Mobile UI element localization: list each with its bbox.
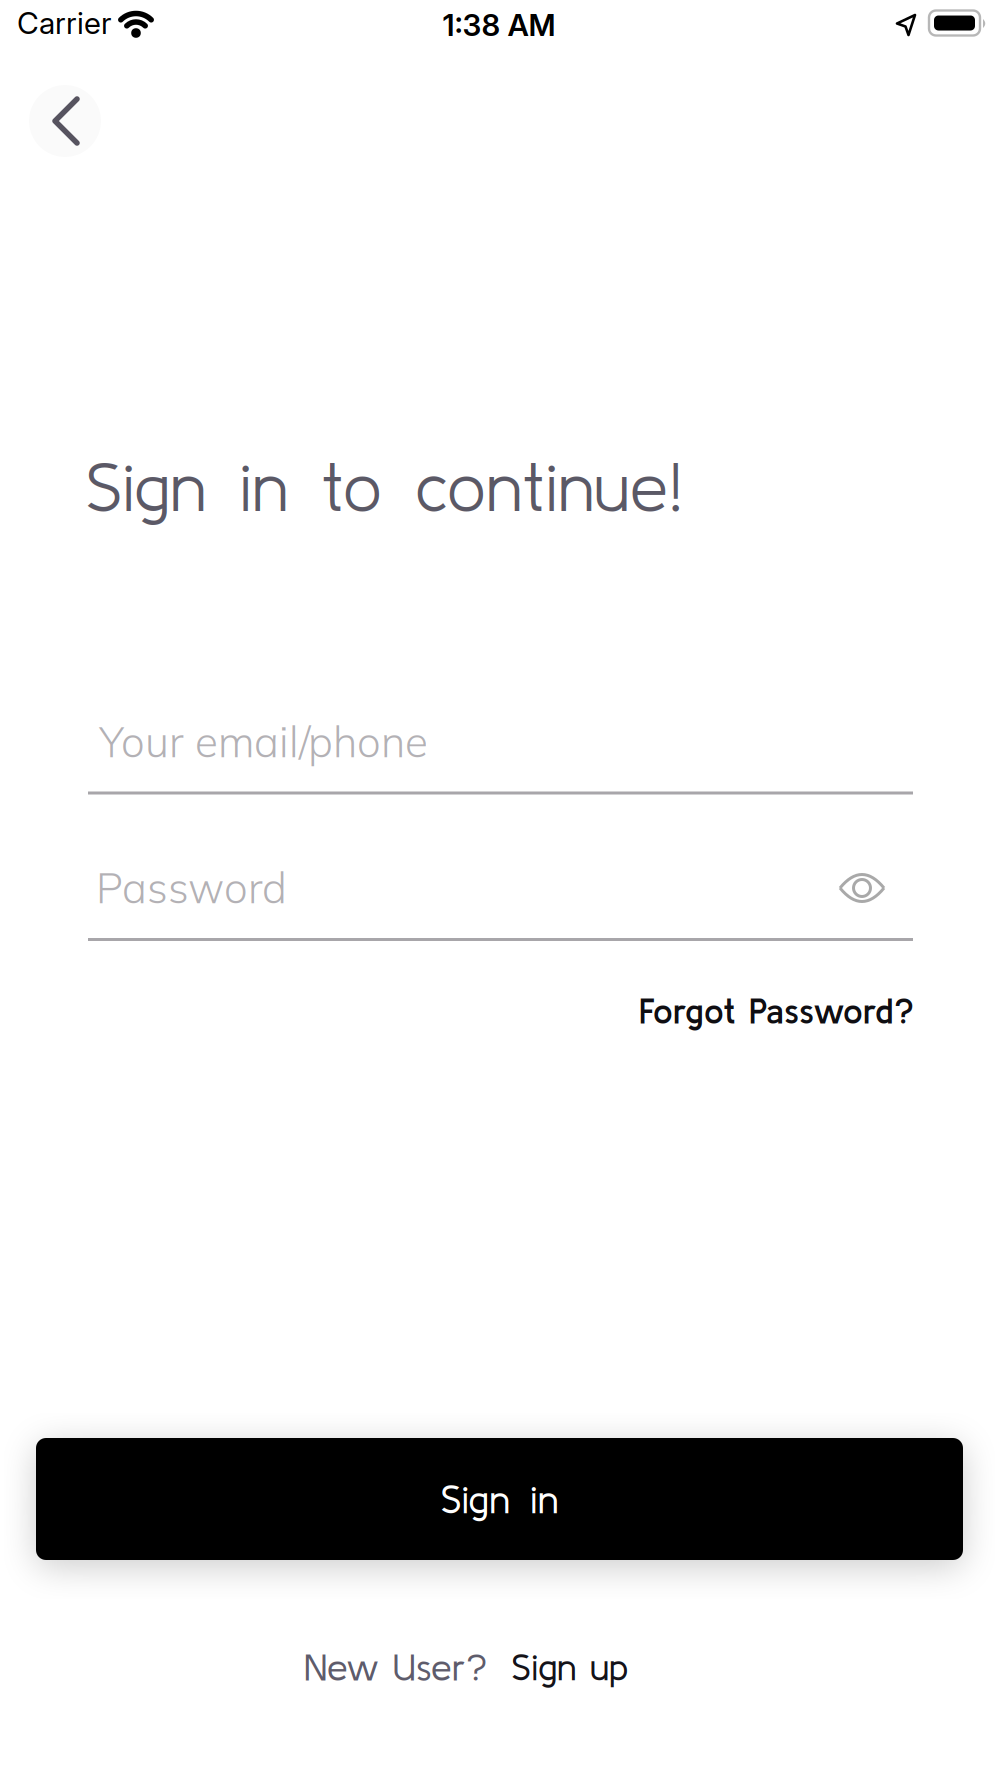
staticText: to [321, 447, 382, 525]
button[interactable]: Back [34, 89, 98, 153]
staticText: Carrier [17, 5, 112, 41]
staticText: Your email/phone [99, 715, 428, 768]
staticText: New User? [304, 1646, 487, 1688]
staticText: Sign [440, 1477, 510, 1521]
staticText: Password [96, 861, 287, 914]
staticText: in [530, 1477, 559, 1521]
staticText: 1:38 AM [442, 7, 555, 43]
staticText: Forgot Password? [639, 991, 914, 1031]
button[interactable]: Sign up [511, 1646, 628, 1688]
staticText: in [239, 447, 288, 525]
staticText: Sign up [511, 1646, 628, 1688]
button[interactable]: Forgot Password? [639, 991, 914, 1031]
button[interactable]: Sign [36, 1438, 963, 1560]
button[interactable]: Show password [838, 871, 886, 905]
staticText: Sign [85, 447, 206, 525]
button[interactable]: Your email/phone [88, 706, 913, 794]
button[interactable]: Password [88, 852, 913, 941]
staticText: continue! [415, 447, 682, 525]
